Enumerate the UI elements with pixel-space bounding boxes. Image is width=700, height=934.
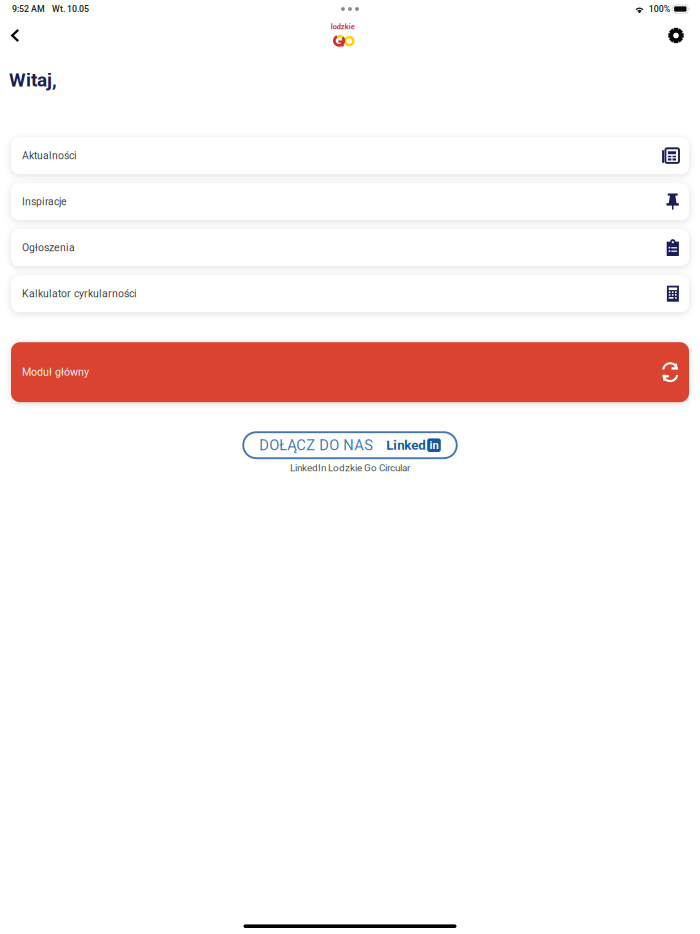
button[interactable]: Kalkulator cyrkularności bbox=[11, 275, 689, 312]
staticText: 100% bbox=[649, 4, 670, 14]
button[interactable]: Inspiracje bbox=[11, 183, 689, 220]
button[interactable]: Moduł główny bbox=[11, 342, 689, 402]
staticText: Moduł główny bbox=[22, 366, 89, 378]
button[interactable]: Back bbox=[0, 23, 33, 48]
staticText: Ogłoszenia bbox=[22, 242, 75, 254]
staticText: Wt. 10.05 bbox=[52, 4, 89, 14]
staticText: Linked bbox=[386, 437, 426, 453]
staticText: lodzkie bbox=[331, 22, 355, 31]
button[interactable]: Ogłoszenia bbox=[11, 229, 689, 266]
staticText: in bbox=[429, 439, 438, 452]
staticText: Inspiracje bbox=[22, 196, 67, 208]
staticText: Witaj, bbox=[9, 69, 57, 91]
button[interactable]: Aktualności bbox=[11, 137, 689, 174]
button[interactable]: DOŁĄCZ DO NAS bbox=[243, 432, 457, 458]
staticText: 9:52 AM bbox=[12, 4, 45, 14]
button[interactable]: Settings bbox=[654, 22, 700, 48]
staticText: Aktualności bbox=[22, 150, 77, 162]
staticText: Kalkulator cyrkularności bbox=[22, 288, 137, 300]
staticText: DOŁĄCZ DO NAS bbox=[259, 437, 373, 454]
staticText: LinkedIn Lodzkie Go Circular bbox=[290, 462, 410, 474]
